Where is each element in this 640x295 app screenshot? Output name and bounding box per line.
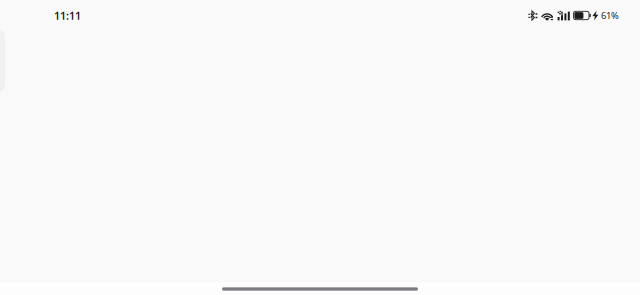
staticText: 11:11 <box>54 8 81 23</box>
staticText: 61% <box>601 9 619 22</box>
